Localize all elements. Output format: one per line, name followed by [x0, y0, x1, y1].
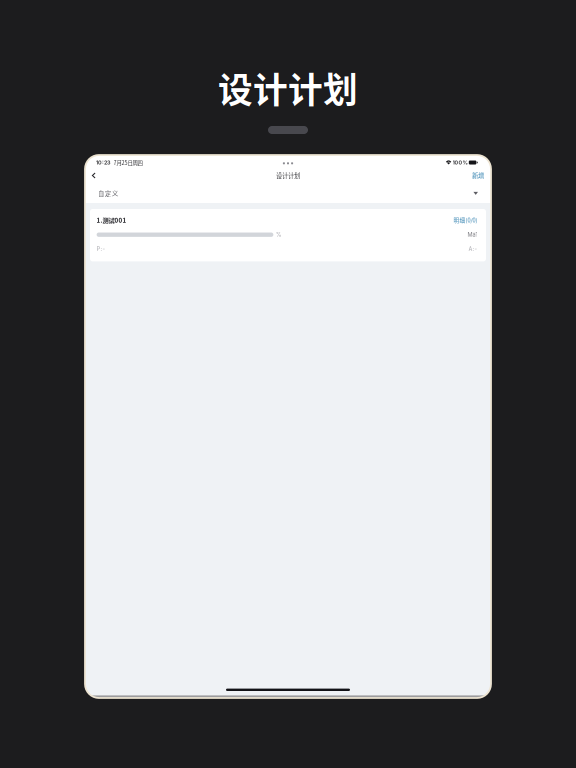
staticText: 设计计划: [276, 171, 300, 180]
button[interactable]: Back: [88, 168, 100, 182]
staticText: 100%: [452, 159, 467, 166]
staticText: 7月25日周四: [114, 158, 143, 166]
button[interactable]: 新增: [472, 168, 484, 182]
staticText: P:-: [97, 246, 106, 253]
staticText: 自定义: [98, 189, 119, 198]
staticText: 明细(0/0): [453, 216, 477, 224]
staticText: 1.测试001: [97, 215, 127, 224]
button[interactable]: 明细(0/0): [453, 216, 477, 224]
staticText: 新增: [472, 171, 484, 180]
staticText: A:-: [468, 246, 477, 253]
button[interactable]: 自定义: [85, 182, 491, 203]
button[interactable]: 1.测试001 计划: [90, 209, 486, 261]
staticText: Ma1: [467, 231, 477, 238]
staticText: 设计计划: [218, 63, 358, 113]
staticText: %: [276, 231, 281, 238]
staticText: 10:23: [96, 159, 110, 166]
